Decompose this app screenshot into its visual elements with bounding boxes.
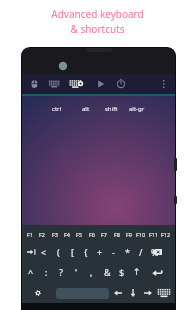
staticText: F11 [149,231,159,238]
staticText: F5 [76,231,83,238]
staticText: F4 [64,231,71,238]
button[interactable]: ↑ [130,265,144,279]
staticText: F8 [114,231,121,238]
staticText: * [125,246,130,258]
staticText: F9 [126,231,133,238]
staticText: & shortcuts [70,22,125,36]
button[interactable]: F12 [159,227,173,241]
button[interactable]: $ [115,265,129,279]
button[interactable]: Backspace [150,245,164,259]
button[interactable]: [ [65,245,79,259]
staticText: alt [82,105,90,113]
button[interactable]: { [79,245,93,259]
button[interactable]: Left [111,286,125,300]
staticText: F10 [136,231,146,238]
staticText: : [45,266,48,278]
staticText: ctrl [52,105,62,113]
staticText: F2 [39,231,46,238]
staticText: F1 [27,231,34,238]
button[interactable]: More options [155,74,175,94]
button[interactable]: Tab [24,245,38,259]
button[interactable]: Keyboard [44,74,65,94]
staticText: < [41,246,47,258]
button[interactable]: F6 [85,227,99,241]
button[interactable]: ^ [24,265,38,279]
button[interactable]: F8 [110,227,124,241]
button[interactable]: Down [126,286,140,300]
staticText: + [97,246,103,258]
button[interactable]: < [37,245,51,259]
button[interactable]: ( [51,245,65,259]
button[interactable]: F7 [97,227,111,241]
button[interactable]: Hide keyboard [157,286,171,300]
button[interactable]: alt-gr [126,103,148,115]
button[interactable]: F11 [147,227,161,241]
button[interactable]: F5 [72,227,86,241]
staticText: { [84,246,88,258]
button[interactable]: Settings [31,286,45,300]
button[interactable]: shift [100,103,122,115]
button[interactable]: alt [75,103,97,115]
button[interactable]: + [93,245,107,259]
button[interactable]: F3 [48,227,62,241]
staticText: Advanced keyboard [51,7,144,21]
button[interactable]: ctrl [46,103,68,115]
button[interactable]: / [134,245,148,259]
button[interactable]: F1 [23,227,37,241]
button[interactable]: Enter [150,265,164,279]
button[interactable]: ' [69,265,83,279]
staticText: alt-gr [129,105,145,113]
button[interactable]: Keyboard settings [65,74,86,94]
button[interactable]: % [148,245,162,259]
staticText: % [151,246,159,258]
staticText: , [90,266,93,278]
staticText: F12 [161,231,171,238]
button[interactable]: & [100,265,114,279]
button[interactable]: F10 [134,227,148,241]
staticText: F6 [89,231,96,238]
staticText: - [112,246,115,258]
staticText: $ [119,266,125,278]
button[interactable]: , [84,265,98,279]
staticText: ^ [28,266,34,278]
button[interactable]: : [39,265,53,279]
button[interactable]: Mouse input [22,74,44,94]
button[interactable]: Power [108,74,132,94]
button[interactable]: F4 [60,227,74,241]
staticText: ( [57,246,60,258]
button[interactable]: - [106,245,120,259]
staticText: ? [59,266,63,278]
button[interactable]: Right [141,286,155,300]
staticText: shift [105,105,118,113]
button[interactable]: F2 [35,227,49,241]
staticText: F7 [101,231,108,238]
staticText: & [104,266,111,278]
button[interactable]: * [120,245,134,259]
staticText: [ [71,246,74,258]
button[interactable]: Run [86,74,108,94]
staticText: ' [75,266,78,278]
staticText: ↑ [133,267,141,277]
button[interactable]: F9 [122,227,136,241]
staticText: / [139,246,143,258]
staticText: F3 [52,231,59,238]
button[interactable]: ? [54,265,68,279]
